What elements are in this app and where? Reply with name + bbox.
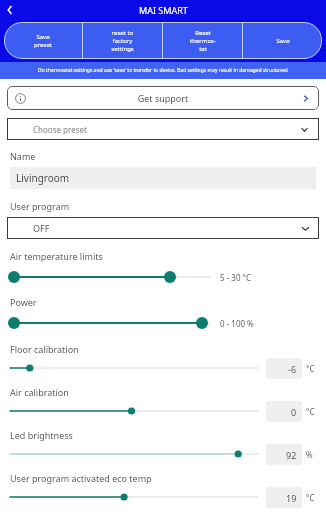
staticText: -6 [288,363,297,375]
staticText: Air calibration [10,386,69,398]
staticText: MAI SMART [139,4,188,16]
staticText: 5 - 30 °C [220,272,252,283]
staticText: 19 [286,492,297,504]
button[interactable]: Get support [7,86,319,110]
button[interactable]: Save [243,22,322,59]
staticText: Air temperature limits [10,250,103,262]
staticText: Power [10,296,37,308]
button[interactable]: Choose preset [7,118,319,140]
staticText: User program [10,200,70,212]
button[interactable]: -6 [266,358,302,379]
staticText: reset to factory settings [111,29,134,53]
button[interactable]: Livingroom [10,167,316,189]
staticText: °C [306,492,315,503]
staticText: Save preset [34,33,52,49]
button[interactable]: OFF [7,217,319,239]
staticText: Get support [26,92,300,104]
button[interactable]: 92 [266,444,302,465]
staticText: OFF [33,222,300,234]
staticText: °C [306,406,315,417]
staticText: 0 [291,406,297,418]
staticText: °C [306,363,315,374]
staticText: Name [10,150,36,162]
button[interactable]: Back [0,0,19,19]
button[interactable] [10,484,258,510]
staticText: 92 [286,449,297,461]
staticText: 0 - 100 % [220,318,254,329]
button[interactable] [10,264,210,290]
button[interactable] [10,441,258,467]
staticText: Reset thermos- tat [190,29,216,53]
button[interactable] [10,398,258,424]
staticText: User program activated eco temp [10,472,152,484]
staticText: % [306,449,313,460]
staticText: Choose preset [33,124,300,135]
staticText: Floor calibration [10,343,79,355]
staticText: Save [276,37,290,45]
button[interactable]: reset to factory settings [83,22,162,59]
button[interactable]: Save preset [4,22,82,59]
button[interactable]: 19 [266,487,302,508]
staticText: Led brightness [10,429,73,441]
button[interactable] [10,355,258,381]
button[interactable] [10,310,210,336]
button[interactable]: Reset thermos- tat [163,22,242,59]
staticText: Do thermostat settings and use 'save' to… [38,67,288,74]
staticText: Livingroom [16,171,70,185]
button[interactable]: 0 [266,401,302,422]
